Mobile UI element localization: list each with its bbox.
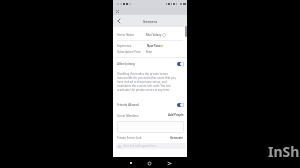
button[interactable]: Allow Joining [113,58,187,70]
button[interactable]: Your link will appear here [116,143,186,149]
button[interactable]: Home [144,158,154,168]
staticText: Free [146,50,152,54]
button[interactable]: Recents [126,158,136,168]
button[interactable]: Toggle [177,62,184,66]
button[interactable]: Add People [167,112,185,118]
staticText: Subscription Price [117,50,141,54]
staticText: Disabling this makes the private server … [117,72,180,92]
staticText: Server Name [117,33,135,37]
staticText: New Tone [147,44,161,48]
staticText: Private Server Link [117,136,142,140]
button[interactable]: Friends Allowed [113,99,187,111]
staticText: Experience [117,44,132,48]
staticText: InShot [268,142,300,161]
staticText: Your link will appear here [123,144,157,148]
staticText: Add People [168,113,184,117]
button[interactable]: Edit server name [162,33,166,37]
button[interactable]: Close [115,9,120,14]
button[interactable]: Back [115,17,123,25]
staticText: Server Members [117,114,139,118]
button[interactable]: Generate [169,135,184,141]
staticText: Mini Valaxy [146,33,162,37]
button[interactable]: Back [164,158,174,168]
button[interactable]: Toggle [177,103,184,107]
staticText: Generate [170,136,183,140]
staticText: Allow Joining [117,62,135,66]
staticText: Servers [143,19,158,24]
staticText: Friends Allowed [117,103,139,107]
